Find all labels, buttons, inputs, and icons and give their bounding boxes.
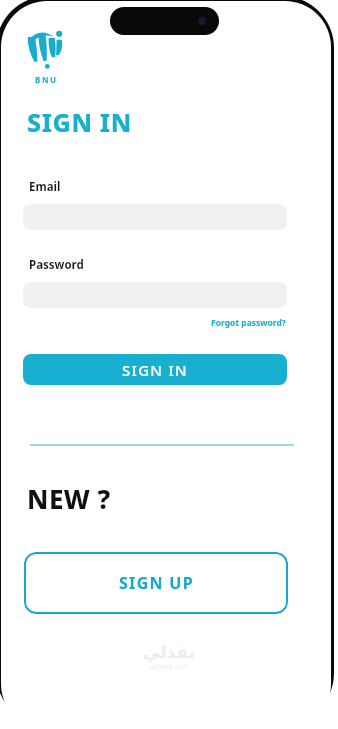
staticText: BNU [35, 74, 58, 85]
button[interactable]: SIGN UP [24, 552, 288, 614]
staticText: NEW ? [27, 481, 111, 516]
staticText: SIGN IN [27, 105, 132, 139]
button[interactable]: SIGN IN [23, 354, 287, 385]
staticText: Email [29, 179, 61, 195]
staticText: SIGN IN [122, 360, 189, 380]
staticText: Forgot password? [211, 317, 286, 329]
staticText: Password [29, 257, 84, 273]
button[interactable]: Forgot password? [208, 314, 289, 332]
staticText: نفذلي [143, 642, 196, 662]
staticText: nafexly.com [149, 662, 189, 672]
staticText: SIGN UP [119, 572, 194, 594]
other: BNU logo [24, 25, 68, 71]
